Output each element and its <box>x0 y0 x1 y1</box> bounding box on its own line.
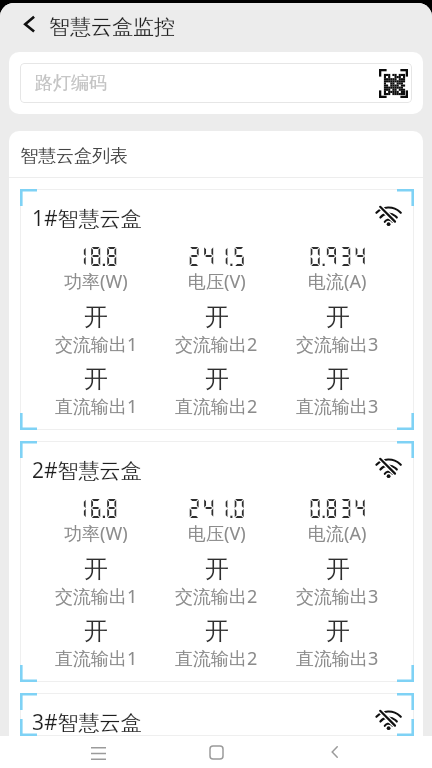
button[interactable]: 路灯编码 <box>20 63 412 103</box>
staticText: 241.5 <box>187 244 247 267</box>
button[interactable]: 2#智慧云盒 <box>20 441 414 682</box>
button[interactable]: 开 <box>277 302 398 332</box>
staticText: 交流输出3 <box>296 332 379 357</box>
button[interactable]: 开 <box>277 554 398 584</box>
button[interactable]: Home <box>195 736 237 768</box>
staticText: 3#智慧云盒 <box>32 708 142 736</box>
staticText: 智慧云盒列表 <box>20 145 128 168</box>
staticText: 直流输出1 <box>55 646 138 671</box>
button[interactable]: 开 <box>156 364 277 394</box>
staticText: 开 <box>326 364 350 394</box>
button[interactable]: 开 <box>156 616 277 646</box>
button[interactable]: Back <box>14 11 45 42</box>
staticText: 2#智慧云盒 <box>32 456 142 485</box>
staticText: 路灯编码 <box>35 72 107 95</box>
staticText: 交流输出2 <box>175 332 258 357</box>
other: Wi-Fi offline <box>376 710 402 736</box>
button[interactable]: 开 <box>36 364 156 394</box>
staticText: 交流输出3 <box>296 584 379 609</box>
staticText: 开 <box>326 616 350 646</box>
button[interactable]: Back <box>314 736 356 768</box>
staticText: 开 <box>205 302 229 332</box>
staticText: 交流输出1 <box>55 332 138 357</box>
button[interactable]: 开 <box>156 554 277 584</box>
staticText: 开 <box>326 554 350 584</box>
button[interactable]: Recents <box>77 736 119 768</box>
button[interactable]: 开 <box>277 364 398 394</box>
button[interactable]: 1#智慧云盒 <box>20 189 414 430</box>
button[interactable]: Scan QR code <box>378 68 408 98</box>
button[interactable]: 开 <box>36 616 156 646</box>
staticText: 交流输出2 <box>175 584 258 609</box>
staticText: 电压(V) <box>188 269 246 294</box>
staticText: 电流(A) <box>308 521 367 546</box>
button[interactable]: 开 <box>156 302 277 332</box>
staticText: 开 <box>326 302 350 332</box>
staticText: 直流输出3 <box>296 646 379 671</box>
staticText: 电压(V) <box>188 521 246 546</box>
staticText: 电流(A) <box>308 269 367 294</box>
staticText: 交流输出1 <box>55 584 138 609</box>
staticText: 开 <box>205 616 229 646</box>
staticText: 18.8 <box>74 244 119 267</box>
button[interactable]: 开 <box>36 302 156 332</box>
button[interactable]: 开 <box>277 616 398 646</box>
staticText: 16.8 <box>74 496 119 519</box>
staticText: 开 <box>84 554 108 584</box>
staticText: 开 <box>205 554 229 584</box>
staticText: 直流输出2 <box>175 394 258 419</box>
staticText: 智慧云盒监控 <box>49 14 175 40</box>
staticText: 0.834 <box>308 496 368 519</box>
staticText: 开 <box>84 364 108 394</box>
staticText: 功率(W) <box>64 521 128 546</box>
staticText: 241.0 <box>187 496 247 519</box>
staticText: 开 <box>84 302 108 332</box>
other: Wi-Fi offline <box>376 458 402 484</box>
staticText: 直流输出2 <box>175 646 258 671</box>
button[interactable]: 开 <box>36 554 156 584</box>
staticText: 开 <box>84 616 108 646</box>
button[interactable]: 3#智慧云盒 <box>20 693 414 736</box>
staticText: 直流输出1 <box>55 394 138 419</box>
staticText: 开 <box>205 364 229 394</box>
staticText: 1#智慧云盒 <box>32 204 142 233</box>
other: Wi-Fi offline <box>376 206 402 232</box>
staticText: 功率(W) <box>64 269 128 294</box>
staticText: 0.934 <box>308 244 368 267</box>
staticText: 直流输出3 <box>296 394 379 419</box>
